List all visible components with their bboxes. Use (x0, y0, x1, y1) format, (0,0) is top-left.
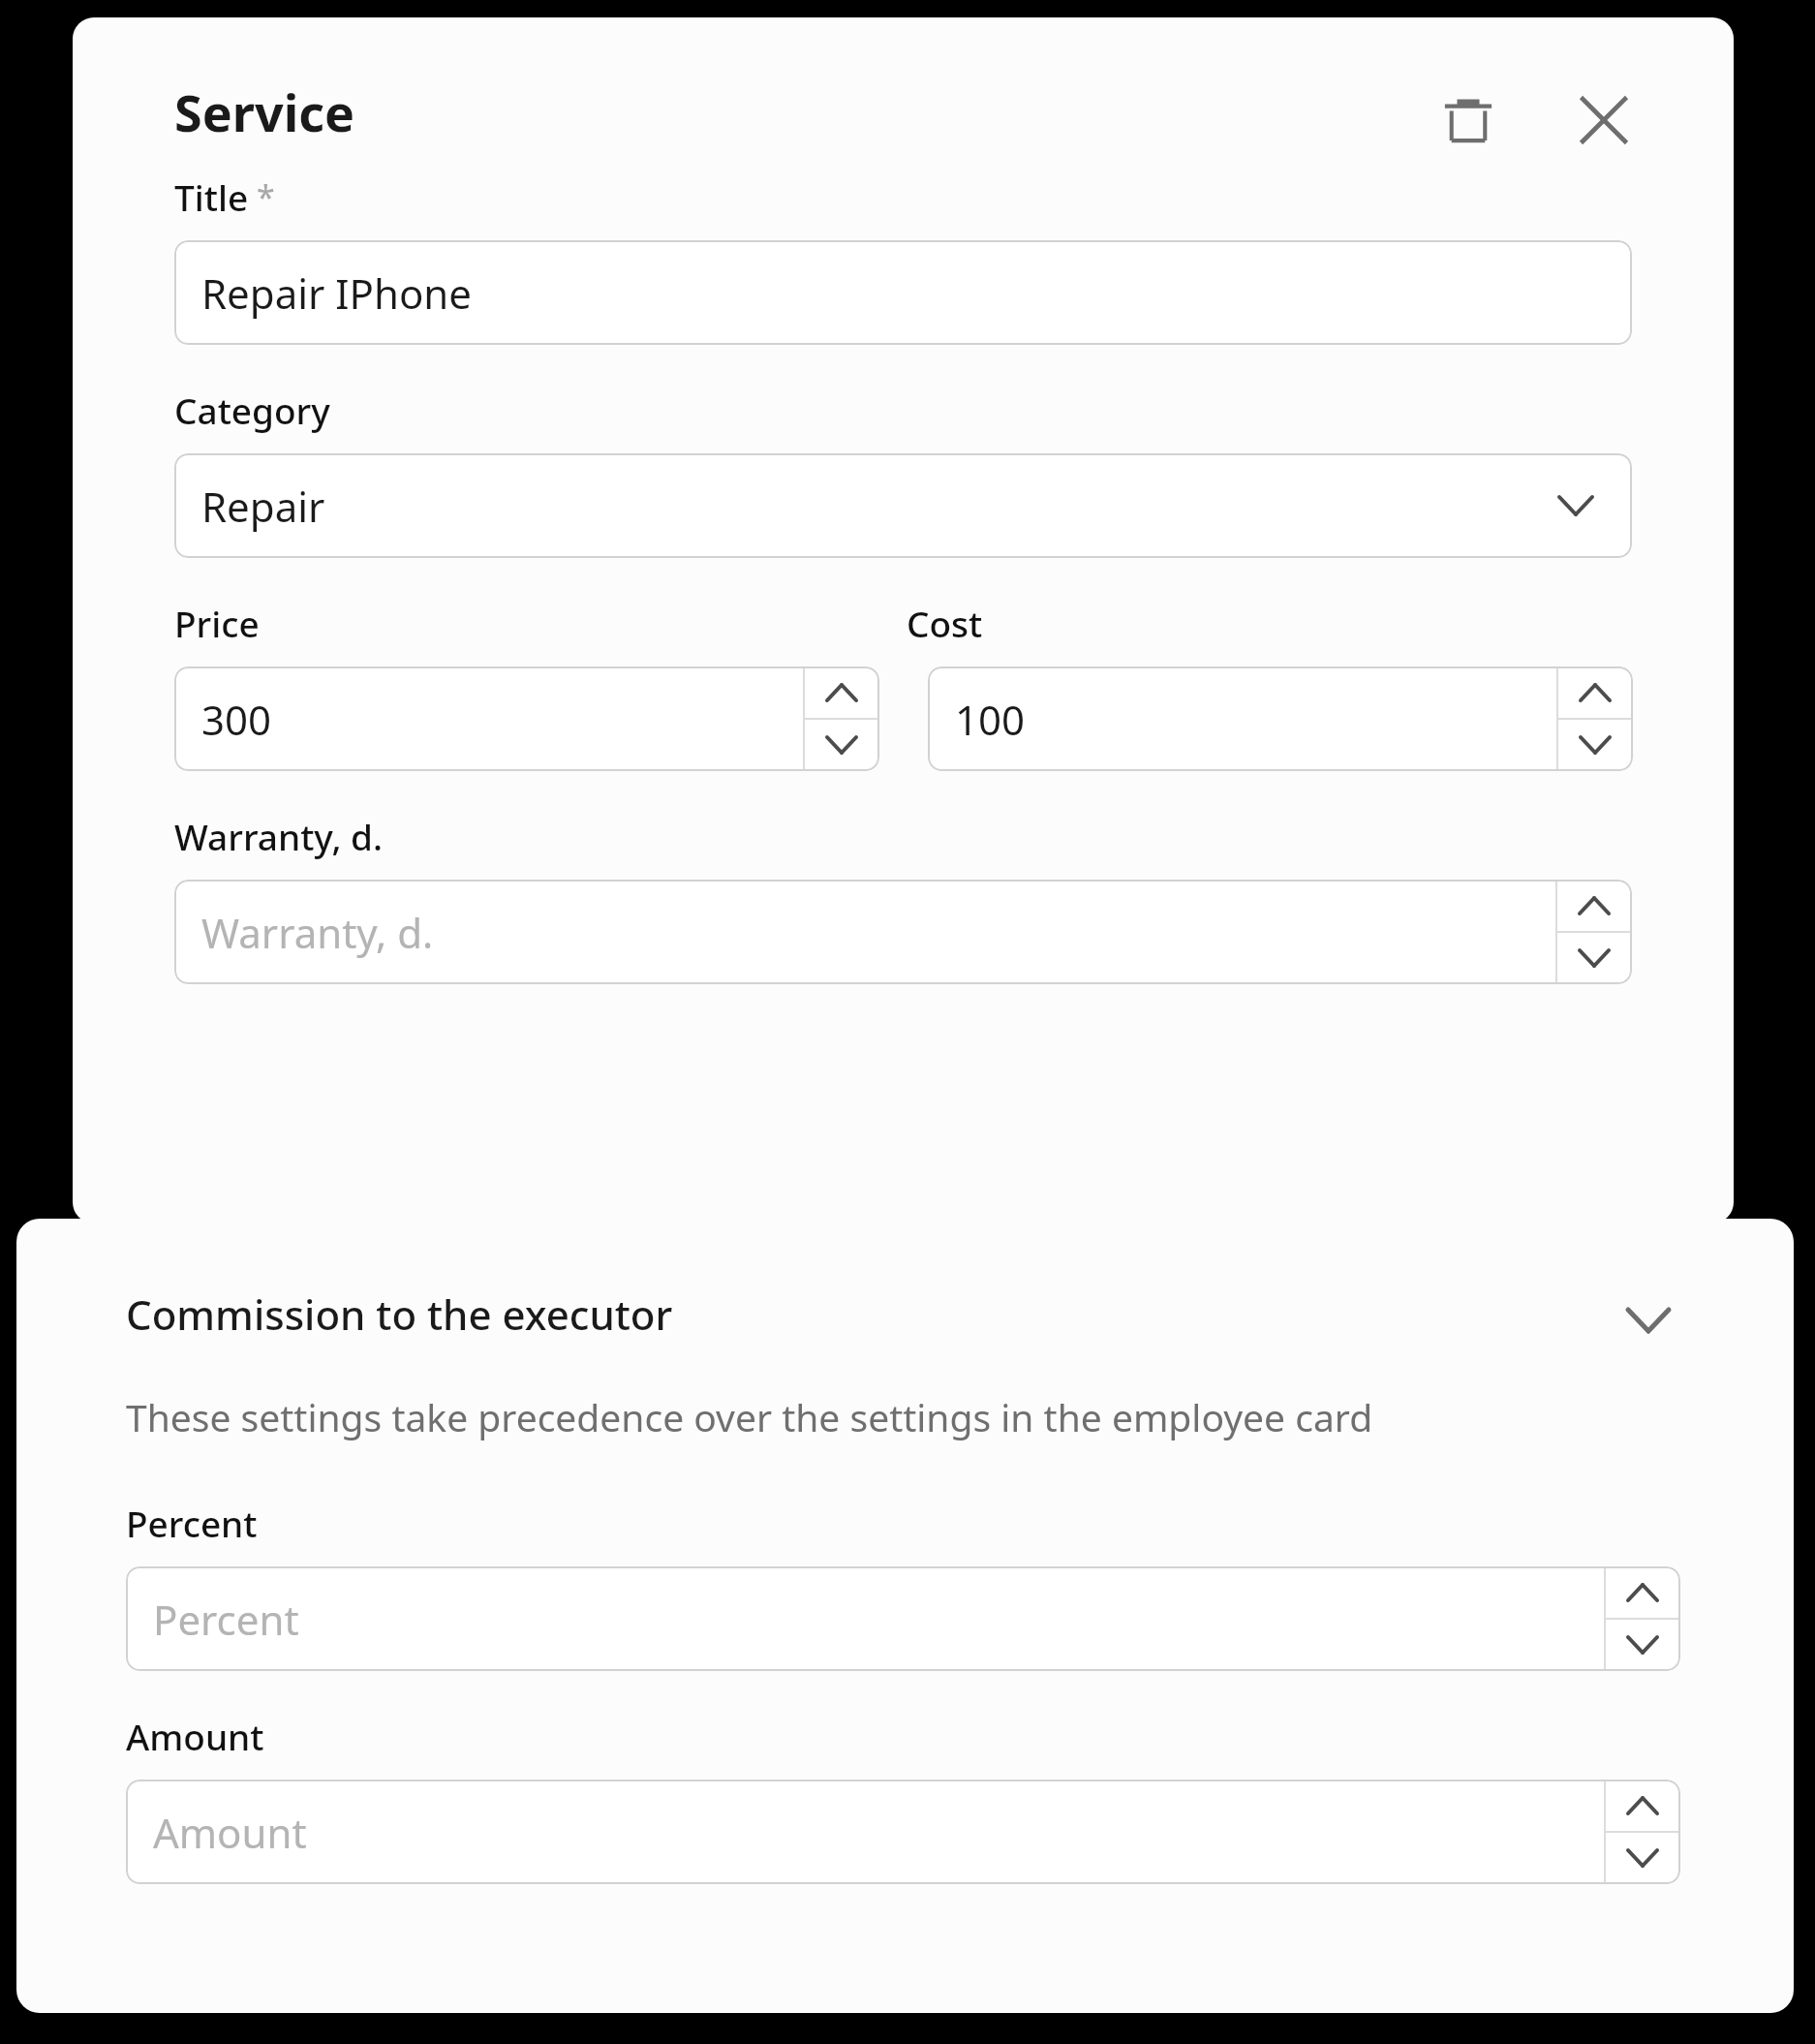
button[interactable]: Increase (1605, 1780, 1680, 1832)
staticText: Amount (126, 1712, 264, 1760)
staticText: Category (174, 386, 330, 434)
button[interactable]: Close (1559, 76, 1648, 165)
staticText: Warranty, d. (174, 812, 384, 860)
staticText: These settings take precedence over the … (126, 1391, 1373, 1442)
staticText: Service (174, 77, 355, 146)
staticText: Percent (153, 1592, 299, 1647)
staticText: Cost (907, 599, 983, 647)
button[interactable]: Increase (1556, 880, 1632, 932)
staticText: Repair (201, 479, 325, 534)
staticText: Commission to the executor (126, 1286, 673, 1342)
staticText: * (257, 174, 275, 219)
button[interactable]: Increase (1605, 1566, 1680, 1619)
staticText: Amount (153, 1805, 307, 1860)
button[interactable]: Decrease (1557, 719, 1633, 771)
button[interactable]: Category dropdown (174, 453, 1632, 558)
button[interactable]: Commission to the executor (16, 1275, 1794, 1366)
staticText: Price (174, 599, 260, 647)
staticText: Warranty, d. (201, 905, 434, 960)
button[interactable]: Repair IPhone (174, 240, 1632, 345)
staticText: 300 (201, 692, 272, 747)
staticText: 100 (955, 692, 1026, 747)
button[interactable]: Decrease (804, 719, 879, 771)
button[interactable]: Increase (1557, 666, 1633, 719)
staticText: Percent (126, 1499, 258, 1547)
staticText: Title (174, 172, 249, 221)
staticText: Repair IPhone (201, 265, 472, 321)
button[interactable]: Delete (1424, 76, 1513, 165)
button[interactable]: Decrease (1605, 1619, 1680, 1671)
button[interactable]: Increase (804, 666, 879, 719)
button[interactable]: Decrease (1605, 1832, 1680, 1884)
button[interactable]: Decrease (1556, 932, 1632, 984)
